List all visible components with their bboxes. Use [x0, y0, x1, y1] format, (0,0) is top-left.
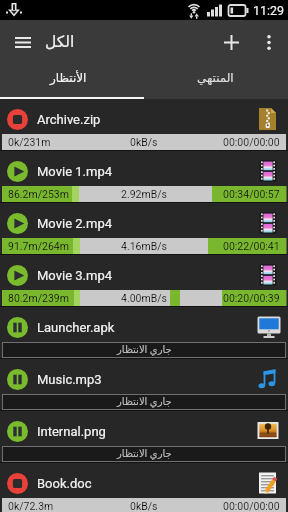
staticText: 4.16mB/s — [121, 240, 167, 252]
staticText: 86.2m/253m — [8, 188, 69, 200]
button[interactable] — [251, 22, 287, 62]
staticText: 00:34/00:57 — [223, 188, 280, 200]
staticText: Launcher.apk — [37, 320, 115, 335]
staticText: المنتهي — [197, 71, 234, 85]
staticText: 00:00/00:00 — [223, 136, 280, 148]
staticText: الكل — [45, 33, 75, 51]
staticText: 00:20/00:39 — [223, 292, 280, 304]
staticText: Archive.zip — [37, 112, 101, 127]
staticText: Movie 2.mp4 — [37, 216, 112, 231]
staticText: Internal.png — [37, 424, 106, 439]
staticText: 2.92mB/s — [121, 188, 167, 200]
staticText: جاري الانتظار — [117, 344, 172, 356]
staticText: جاري الانتظار — [117, 396, 172, 408]
button[interactable] — [3, 23, 43, 61]
staticText: 0k/231m — [8, 136, 51, 148]
button[interactable]: الأنتظار — [0, 57, 144, 99]
button[interactable]: Movie 1.mp4 — [0, 151, 288, 203]
staticText: 0kB/s — [130, 500, 158, 512]
staticText: Movie 3.mp4 — [37, 268, 112, 283]
button[interactable]: Book.doc — [0, 463, 288, 512]
staticText: 91.7m/264m — [8, 240, 69, 252]
button[interactable]: Internal.png — [0, 411, 288, 463]
staticText: 00:00/00:00 — [223, 500, 280, 512]
staticText: جاري الانتظار — [117, 448, 172, 460]
button[interactable]: Archive.zip — [0, 99, 288, 151]
staticText: 11:29 — [253, 3, 285, 18]
staticText: Music.mp3 — [37, 372, 102, 387]
button[interactable]: Movie 2.mp4 — [0, 203, 288, 255]
button[interactable]: Launcher.apk — [0, 307, 288, 359]
button[interactable]: Movie 3.mp4 — [0, 255, 288, 307]
staticText: 80.2m/239m — [8, 292, 69, 304]
staticText: 0kB/s — [130, 136, 158, 148]
button[interactable] — [211, 22, 251, 62]
staticText: الأنتظار — [50, 71, 87, 85]
button[interactable]: Music.mp3 — [0, 359, 288, 411]
staticText: Movie 1.mp4 — [37, 164, 112, 179]
staticText: 0k/72.3m — [8, 500, 54, 512]
button[interactable]: المنتهي — [144, 57, 288, 99]
staticText: Book.doc — [37, 476, 92, 491]
staticText: 00:22/00:41 — [223, 240, 280, 252]
staticText: 4.00mB/s — [121, 292, 167, 304]
